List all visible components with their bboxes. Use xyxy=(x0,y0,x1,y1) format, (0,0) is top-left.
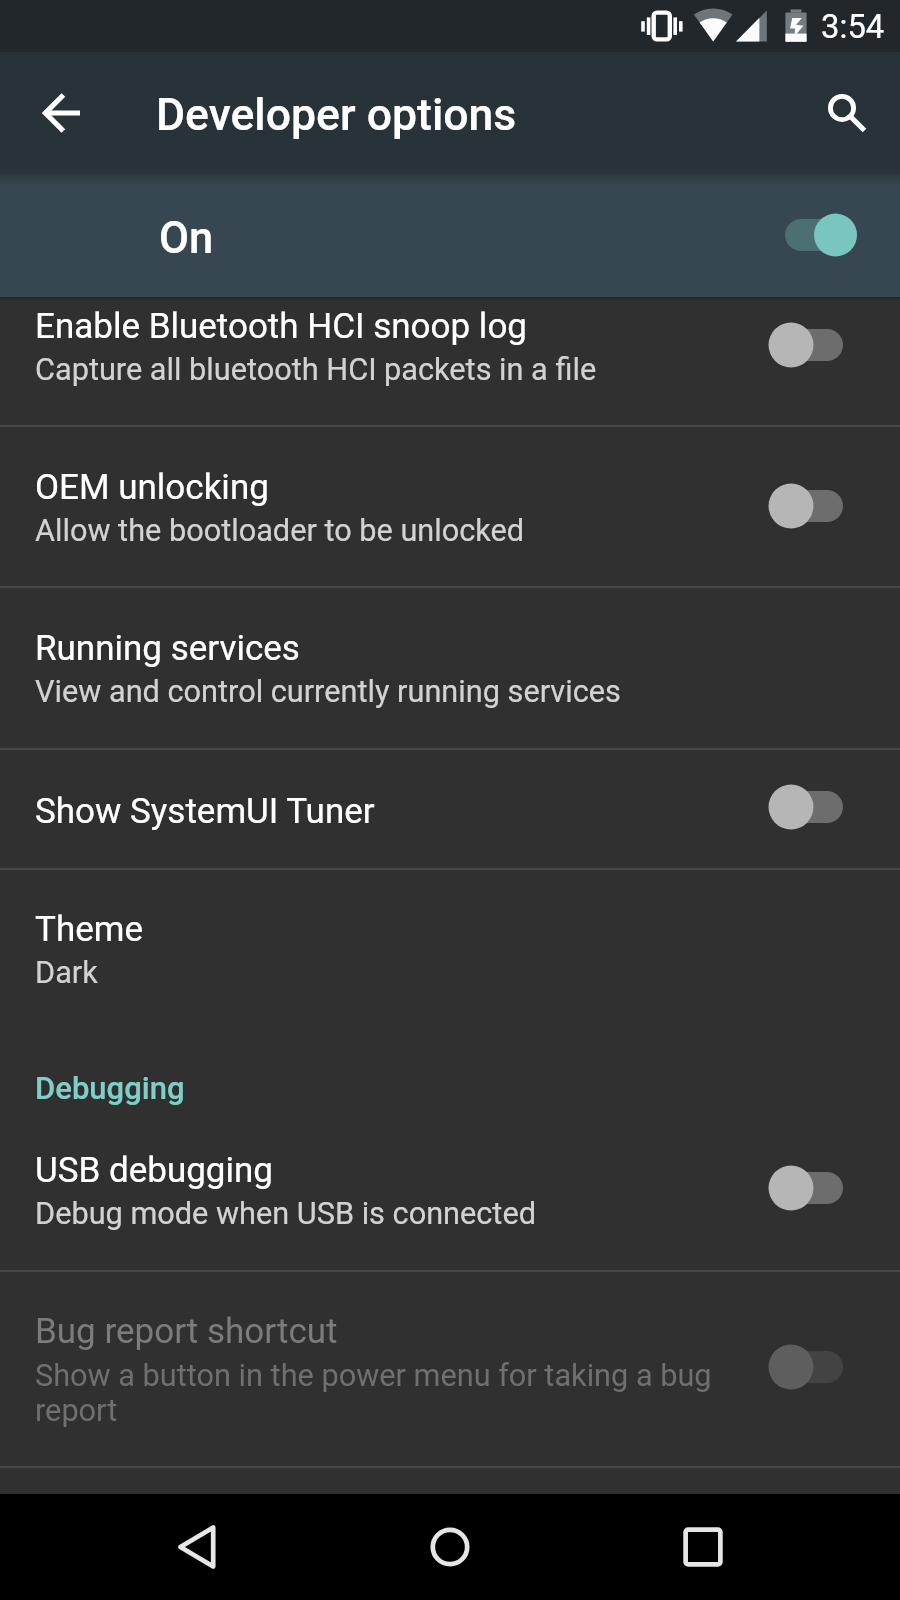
staticText: Running services xyxy=(35,628,300,669)
staticText: Show SystemUI Tuner xyxy=(35,791,375,832)
button[interactable]: Home xyxy=(400,1497,500,1597)
staticText: USB debugging xyxy=(35,1150,274,1191)
button[interactable]: On xyxy=(0,174,900,297)
button[interactable]: Bug report shortcut xyxy=(0,1272,900,1466)
staticText: Show a button in the power menu for taki… xyxy=(35,1358,735,1428)
staticText: Capture all bluetooth HCI packets in a f… xyxy=(35,352,597,388)
button[interactable]: Running services xyxy=(0,588,900,748)
staticText: On xyxy=(159,213,214,264)
button[interactable]: Navigate up xyxy=(24,77,96,149)
button[interactable]: Search xyxy=(806,77,878,149)
button[interactable]: Back xyxy=(150,1497,250,1597)
staticText: Debugging xyxy=(35,1070,185,1106)
button[interactable]: Recent apps xyxy=(653,1497,753,1597)
button[interactable]: Enable Bluetooth HCI snoop log xyxy=(0,297,900,425)
button[interactable]: OEM unlocking xyxy=(0,427,900,586)
staticText: Dark xyxy=(35,955,98,991)
button[interactable]: Show SystemUI Tuner xyxy=(0,750,900,868)
staticText: 3:54 xyxy=(821,8,885,46)
staticText: Enable Bluetooth HCI snoop log xyxy=(35,306,527,347)
staticText: OEM unlocking xyxy=(35,467,269,508)
staticText: Bug report shortcut xyxy=(35,1311,338,1352)
staticText: Debug mode when USB is connected xyxy=(35,1196,536,1232)
button[interactable]: Theme xyxy=(0,870,900,1028)
button[interactable]: USB debugging xyxy=(0,1120,900,1270)
staticText: Theme xyxy=(35,909,143,950)
staticText: View and control currently running servi… xyxy=(35,674,621,710)
staticText: Developer options xyxy=(156,89,517,141)
staticText: Allow the bootloader to be unlocked xyxy=(35,513,525,549)
